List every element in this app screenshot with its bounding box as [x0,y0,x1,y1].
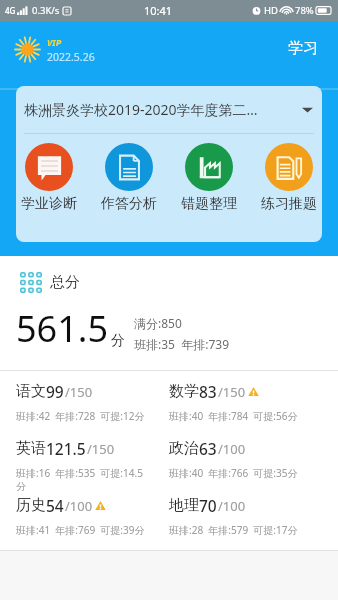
staticText: 分 [111,332,125,350]
staticText: 班排:40 年排:784 可提:56分 [169,409,303,423]
staticText: /150 [87,440,115,458]
staticText: 历史 [16,496,46,515]
staticText: 63 [199,438,217,459]
staticText: 班排:42 年排:728 可提:12分 [16,409,150,423]
staticText: 满分:850 [134,315,182,331]
staticText: 数学 [169,382,199,401]
staticText: 2022.5.26 [47,50,95,64]
staticText: 英语 [16,439,46,458]
button[interactable]: 错题整理 [181,143,237,213]
staticText: 70 [199,495,217,516]
button[interactable]: 学业诊断 [21,143,77,213]
staticText: 作答分析 [101,195,157,213]
staticText: 78% [295,4,314,17]
staticText: 班排:35 年排:739 [134,336,229,352]
staticText: 政治 [169,439,199,458]
button[interactable]: 数学 [169,371,322,428]
staticText: 班排:28 年排:579 可提:17分 [169,523,303,537]
staticText: 地理 [169,496,199,515]
button[interactable]: 株洲景炎学校2019-2020学年度第二… [16,86,322,133]
staticText: /150 [218,383,246,401]
button[interactable]: 政治 [169,428,322,485]
button[interactable]: 作答分析 [101,143,157,213]
button[interactable]: 历史 [16,485,169,542]
staticText: 99 [46,381,64,402]
staticText: 班排:41 年排:769 可提:39分 [16,523,150,537]
staticText: /100 [218,440,246,458]
button[interactable]: 地理 [169,485,322,542]
staticText: 4G [5,5,16,16]
staticText: 学业诊断 [21,195,77,213]
button[interactable]: 学习 [285,36,321,61]
staticText: 0.3K/s [32,4,60,17]
staticText: VIP [47,36,62,48]
button[interactable]: 语文 [16,371,169,428]
staticText: 总分 [50,273,80,292]
staticText: 561.5 [16,304,109,353]
staticText: HD [264,4,278,17]
button[interactable]: 练习推题 [261,143,317,213]
staticText: /150 [65,383,93,401]
staticText: 121.5 [46,438,86,459]
staticText: 练习推题 [261,195,317,213]
staticText: /100 [218,497,246,515]
staticText: 10:41 [144,3,173,18]
staticText: /100 [65,497,93,515]
staticText: 54 [46,495,64,516]
staticText: 错题整理 [181,195,237,213]
staticText: 班排:16 年排:535 可提:14.5分 [16,466,150,493]
staticText: 学习 [288,39,318,58]
staticText: 株洲景炎学校2019-2020学年度第二… [24,100,297,119]
staticText: 班排:40 年排:766 可提:35分 [169,466,303,480]
button[interactable]: 英语 [16,428,169,485]
staticText: 83 [199,381,217,402]
staticText: 语文 [16,382,46,401]
